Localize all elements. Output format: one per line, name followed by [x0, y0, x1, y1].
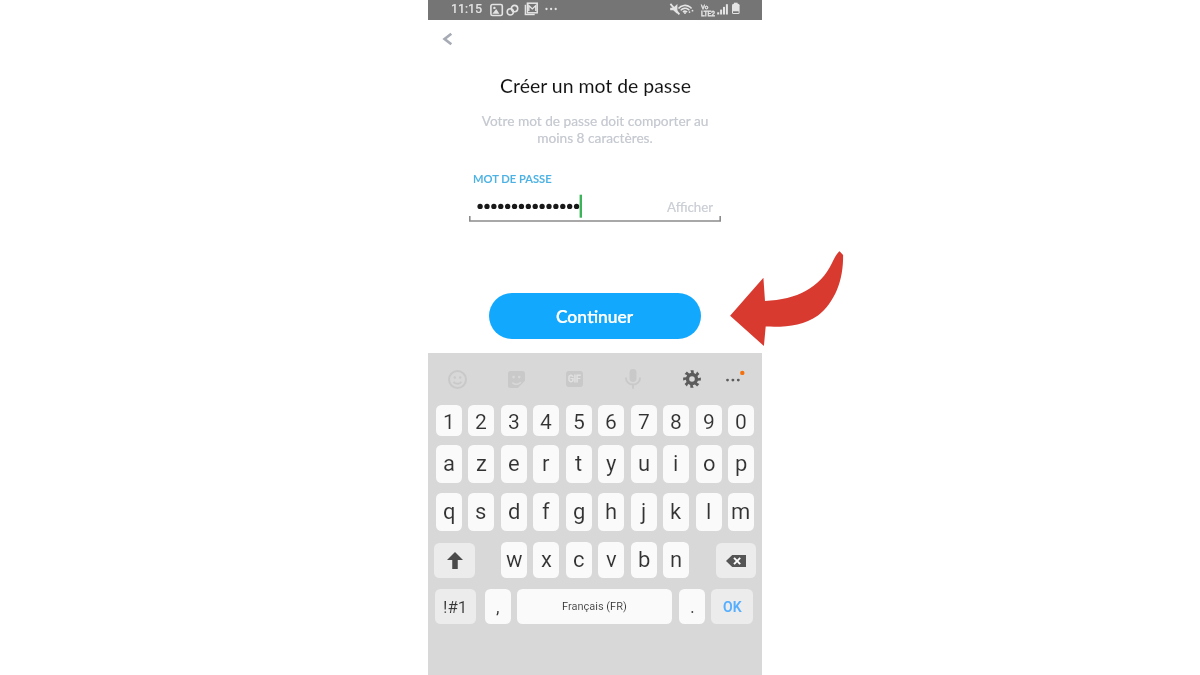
button[interactable]: c: [566, 542, 592, 578]
staticText: 9: [703, 410, 715, 435]
staticText: i: [673, 451, 679, 477]
staticText: Créer un mot de passe: [500, 74, 691, 97]
staticText: j: [641, 499, 647, 525]
staticText: OK: [723, 599, 742, 615]
button[interactable]: 8: [663, 405, 689, 436]
staticText: c: [573, 547, 585, 573]
staticText: Afficher: [667, 199, 714, 215]
button[interactable]: ,: [485, 589, 511, 624]
staticText: .: [690, 596, 695, 617]
button[interactable]: o: [696, 445, 722, 483]
staticText: s: [475, 499, 487, 525]
staticText: !#1: [443, 597, 468, 617]
button[interactable]: Stickers: [500, 363, 532, 395]
button[interactable]: g: [566, 493, 592, 531]
staticText: 2: [475, 410, 487, 435]
button[interactable]: Continuer: [489, 293, 701, 339]
button[interactable]: Shift: [434, 543, 475, 578]
button[interactable]: a: [436, 445, 462, 483]
staticText: Continuer: [556, 306, 634, 327]
button[interactable]: q: [436, 493, 462, 531]
button[interactable]: b: [631, 542, 657, 578]
button[interactable]: Afficher: [667, 199, 714, 215]
button[interactable]: r: [533, 445, 559, 483]
button[interactable]: 3: [501, 405, 527, 436]
button[interactable]: i: [663, 445, 689, 483]
staticText: k: [670, 499, 682, 525]
staticText: z: [476, 451, 487, 477]
button[interactable]: f: [533, 493, 559, 531]
staticText: f: [542, 499, 550, 525]
staticText: 5: [573, 410, 585, 435]
button[interactable]: GIF: [558, 363, 590, 395]
staticText: o: [703, 451, 716, 477]
staticText: 8: [670, 410, 682, 435]
staticText: t: [575, 451, 583, 477]
staticText: 3: [508, 410, 520, 435]
button[interactable]: 7: [631, 405, 657, 436]
staticText: y: [606, 451, 617, 477]
staticText: v: [606, 547, 617, 573]
staticText: GIF: [568, 374, 581, 384]
button[interactable]: v: [598, 542, 624, 578]
button[interactable]: 2: [468, 405, 494, 436]
staticText: b: [638, 547, 651, 573]
staticText: g: [573, 499, 586, 525]
button[interactable]: Back: [431, 25, 459, 53]
staticText: MOT DE PASSE: [473, 172, 552, 185]
button[interactable]: Settings: [676, 363, 708, 395]
button[interactable]: l: [696, 493, 722, 531]
button[interactable]: w: [501, 542, 527, 578]
staticText: Français (FR): [562, 600, 627, 613]
staticText: p: [735, 451, 748, 477]
staticText: d: [508, 499, 521, 525]
staticText: ,: [496, 596, 500, 617]
button[interactable]: d: [501, 493, 527, 531]
staticText: 7: [638, 410, 650, 435]
button[interactable]: u: [631, 445, 657, 483]
button[interactable]: 9: [696, 405, 722, 436]
staticText: x: [541, 547, 552, 573]
staticText: w: [506, 547, 523, 573]
staticText: n: [670, 547, 683, 573]
button[interactable]: Emoji: [441, 363, 473, 395]
button[interactable]: n: [663, 542, 689, 578]
button[interactable]: More options: [719, 363, 751, 395]
button[interactable]: 0: [728, 405, 754, 436]
button[interactable]: 4: [533, 405, 559, 436]
button[interactable]: x: [533, 542, 559, 578]
button[interactable]: 5: [566, 405, 592, 436]
button[interactable]: t: [566, 445, 592, 483]
button[interactable]: 6: [598, 405, 624, 436]
staticText: 1: [443, 410, 455, 435]
staticText: q: [443, 499, 456, 525]
staticText: LTE2: [701, 10, 716, 18]
button[interactable]: m: [728, 493, 754, 531]
button[interactable]: y: [598, 445, 624, 483]
staticText: 4: [540, 410, 552, 435]
button[interactable]: s: [468, 493, 494, 531]
button[interactable]: OK: [711, 589, 753, 624]
staticText: l: [706, 499, 712, 525]
button[interactable]: z: [468, 445, 494, 483]
button[interactable]: k: [663, 493, 689, 531]
staticText: Votre mot de passe doit comporter au moi…: [445, 112, 745, 146]
button[interactable]: !#1: [435, 589, 476, 624]
button[interactable]: .: [679, 589, 705, 624]
staticText: Vo: [701, 3, 709, 10]
button[interactable]: h: [598, 493, 624, 531]
staticText: a: [443, 451, 455, 477]
staticText: h: [605, 499, 618, 525]
staticText: m: [731, 499, 751, 525]
button[interactable]: Français (FR): [517, 589, 672, 624]
button[interactable]: Voice input: [617, 363, 649, 395]
staticText: 11:15: [451, 1, 483, 16]
staticText: 0: [735, 410, 747, 435]
button[interactable]: 1: [436, 405, 462, 436]
staticText: e: [508, 451, 520, 477]
button[interactable]: Backspace: [716, 543, 756, 578]
staticText: 6: [605, 410, 617, 435]
button[interactable]: e: [501, 445, 527, 483]
button[interactable]: p: [728, 445, 754, 483]
button[interactable]: j: [631, 493, 657, 531]
